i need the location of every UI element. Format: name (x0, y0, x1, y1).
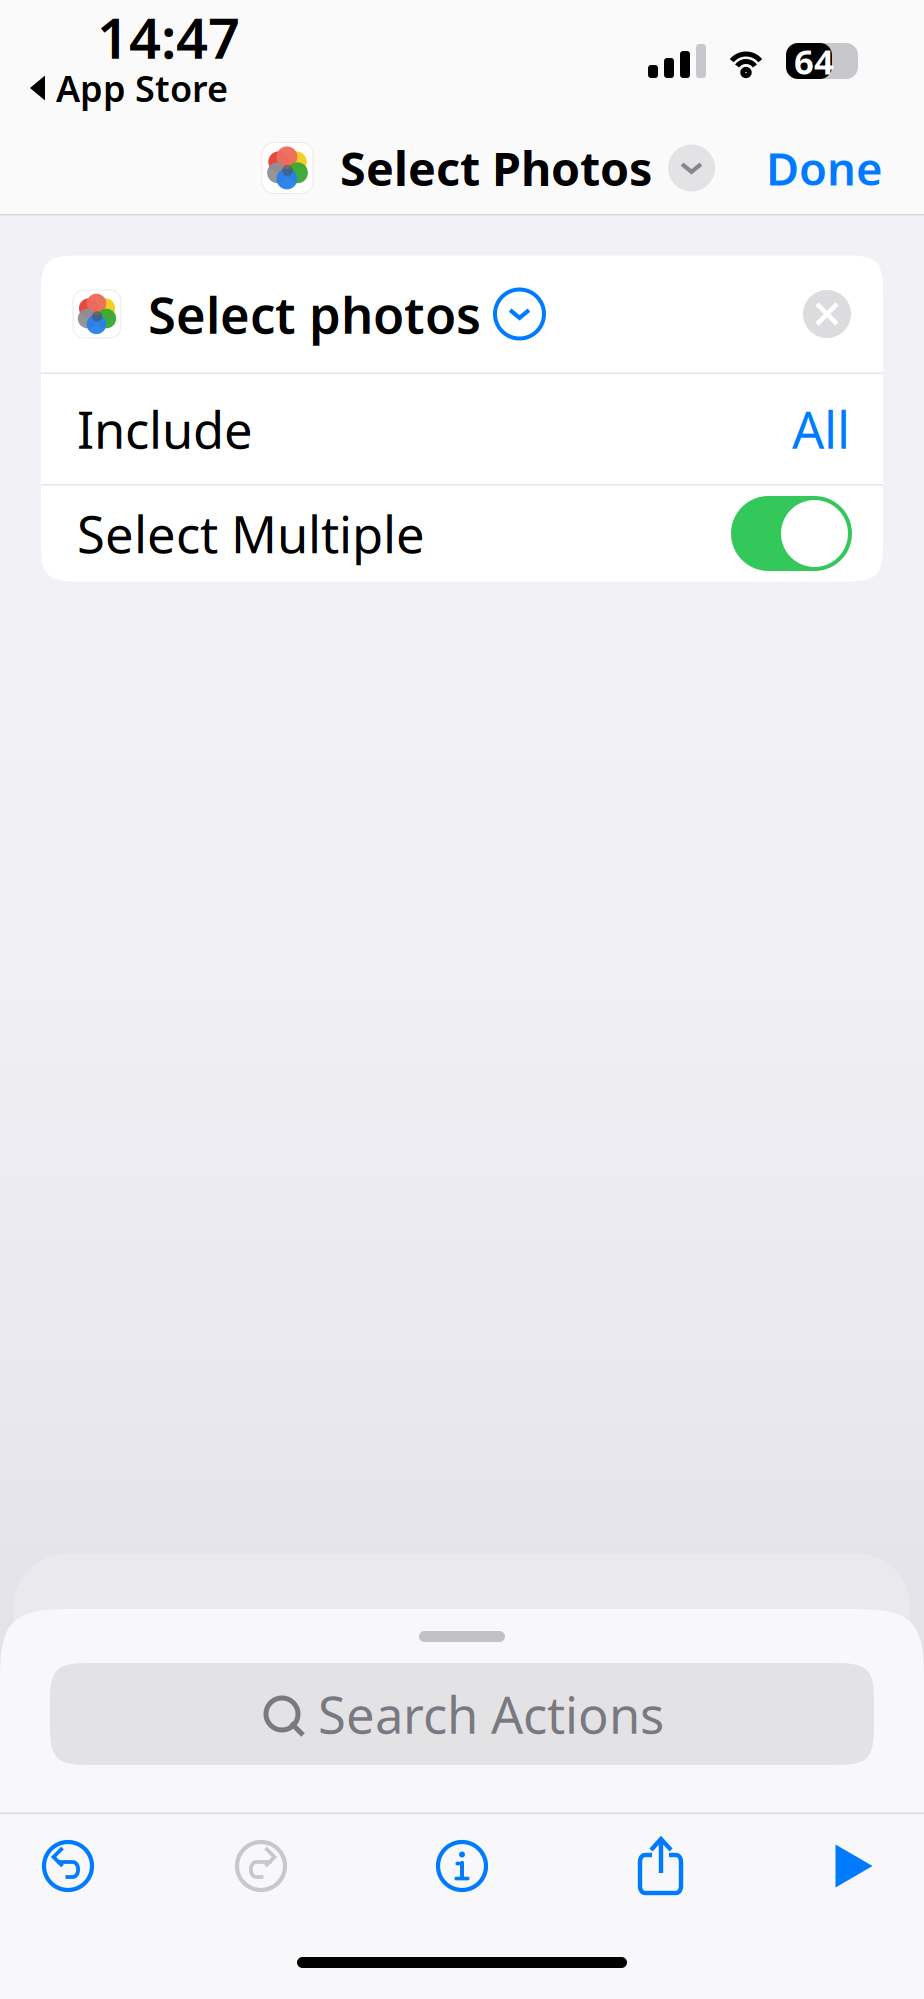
staticText: Search Actions (318, 1680, 664, 1748)
button[interactable]: Delete action (803, 290, 851, 338)
button[interactable]: Run shortcut (784, 1814, 924, 1918)
button[interactable]: Include (41, 374, 883, 484)
button[interactable]: Select Multiple (731, 496, 852, 571)
staticText: All (792, 395, 850, 463)
button[interactable]: Show more (495, 289, 544, 338)
staticText: Select Photos (340, 137, 652, 199)
staticText: 14:47 (97, 0, 240, 74)
button[interactable]: Details (386, 1814, 538, 1918)
staticText: Select photos (148, 280, 481, 348)
button[interactable]: Redo (136, 1814, 386, 1918)
button[interactable]: Shortcut details (668, 144, 715, 191)
staticText: App Store (56, 64, 228, 112)
button[interactable]: Search Actions (50, 1663, 874, 1765)
staticText: Done (766, 138, 883, 198)
staticText: Include (77, 395, 253, 463)
button[interactable]: Share (538, 1814, 784, 1918)
button[interactable]: Undo (0, 1814, 136, 1918)
staticText: Select Multiple (77, 500, 425, 567)
staticText: 64 (794, 38, 834, 84)
button[interactable]: Done (746, 124, 903, 212)
